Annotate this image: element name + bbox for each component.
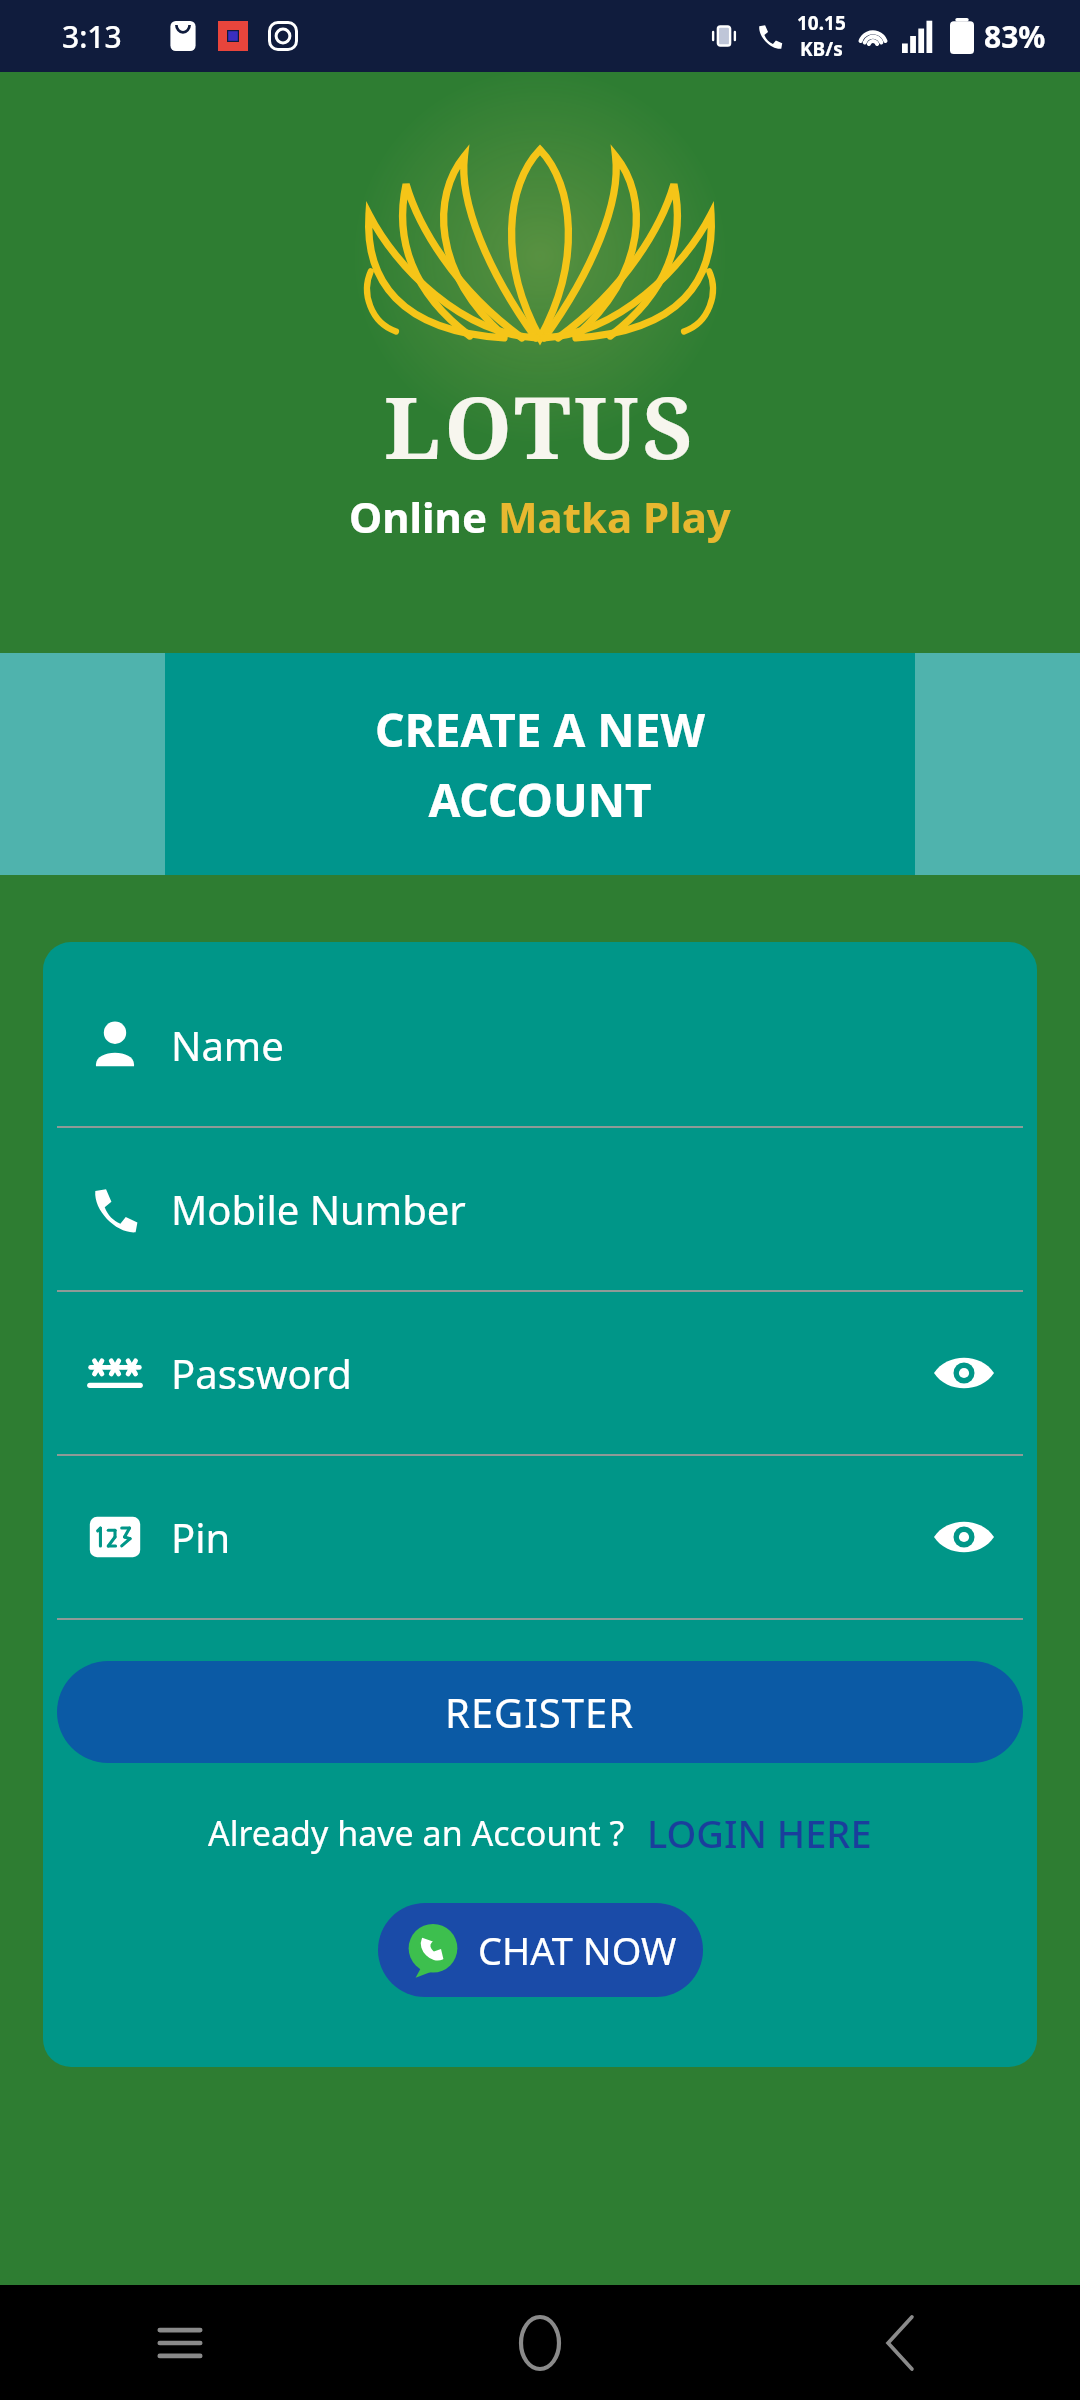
button[interactable]: Recent apps	[0, 2285, 360, 2400]
staticText: 3:13	[62, 16, 122, 57]
staticText: Mobile Number	[171, 1182, 466, 1236]
staticText: Pin	[171, 1510, 231, 1564]
staticText: Password	[171, 1346, 352, 1400]
staticText: 10.15	[797, 10, 846, 36]
staticText: LOTUS	[384, 367, 697, 484]
staticText: Already have an Account ?	[208, 1810, 625, 1856]
button[interactable]: REGISTER	[57, 1661, 1023, 1763]
button[interactable]: Show Password	[919, 1328, 1009, 1418]
button[interactable]: Back	[720, 2285, 1080, 2400]
staticText: REGISTER	[445, 1685, 635, 1739]
staticText: CREATE A NEW ACCOUNT	[375, 698, 705, 830]
staticText: KB/s	[800, 36, 843, 62]
button[interactable]: LOGIN HERE	[647, 1807, 872, 1859]
button[interactable]: Mobile Number	[43, 1128, 1037, 1290]
button[interactable]: CHAT NOW	[378, 1903, 703, 1997]
staticText: Matka Play	[498, 488, 731, 545]
staticText: Online	[349, 488, 498, 545]
staticText: CHAT NOW	[478, 1924, 677, 1976]
button[interactable]: Pin	[43, 1456, 1037, 1618]
button[interactable]: Password	[43, 1292, 1037, 1454]
button[interactable]: CREATE A NEW ACCOUNT	[165, 653, 915, 875]
staticText: LOGIN HERE	[647, 1807, 872, 1859]
button[interactable]: Home	[360, 2285, 720, 2400]
button[interactable]: Show Pin	[919, 1492, 1009, 1582]
staticText: Name	[171, 1018, 284, 1072]
button[interactable]: Name	[43, 964, 1037, 1126]
staticText: 83%	[984, 16, 1046, 57]
